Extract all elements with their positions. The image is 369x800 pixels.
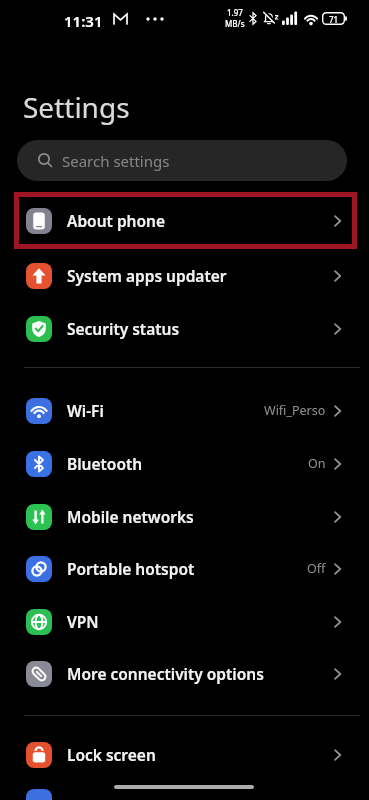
button[interactable]: Wi-Fi bbox=[0, 384, 369, 437]
staticText: System apps updater bbox=[67, 265, 227, 286]
staticText: 11:31 bbox=[64, 11, 103, 31]
button[interactable]: VPN bbox=[0, 595, 369, 648]
staticText: Security status bbox=[67, 318, 180, 339]
button[interactable]: Lock screen bbox=[0, 728, 369, 781]
staticText: More connectivity options bbox=[67, 663, 264, 684]
button[interactable]: Bluetooth bbox=[0, 437, 369, 490]
button[interactable]: Search settings bbox=[17, 140, 347, 181]
staticText: Wifi_Perso bbox=[264, 402, 326, 419]
staticText: Portable hotspot bbox=[67, 558, 195, 579]
staticText: VPN bbox=[67, 611, 99, 632]
staticText: Wi-Fi bbox=[67, 400, 104, 421]
staticText: 71 bbox=[329, 14, 339, 25]
staticText: Bluetooth bbox=[67, 453, 143, 474]
staticText: Mobile networks bbox=[67, 506, 194, 527]
staticText: On bbox=[308, 455, 326, 472]
staticText: Search settings bbox=[62, 151, 170, 171]
staticText: Lock screen bbox=[67, 744, 156, 765]
button[interactable]: About phone bbox=[0, 194, 369, 247]
button[interactable]: Portable hotspot bbox=[0, 542, 369, 595]
button[interactable]: System apps updater bbox=[0, 249, 369, 302]
staticText: Off bbox=[307, 560, 326, 577]
staticText: 1.97 bbox=[227, 7, 243, 18]
button[interactable]: More connectivity options bbox=[0, 647, 369, 700]
staticText: About phone bbox=[67, 210, 166, 231]
button[interactable]: Mobile networks bbox=[0, 490, 369, 543]
button[interactable]: Security status bbox=[0, 302, 369, 355]
staticText: MB/s bbox=[225, 18, 245, 29]
staticText: Settings bbox=[23, 88, 130, 126]
